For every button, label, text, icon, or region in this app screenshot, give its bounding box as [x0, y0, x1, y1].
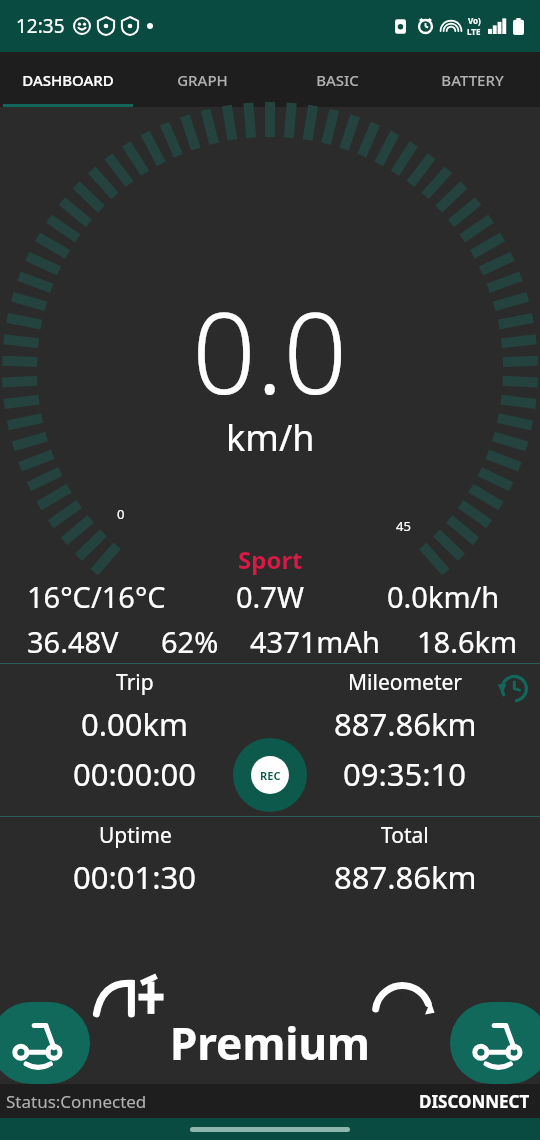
staticText: Premium [170, 1013, 370, 1073]
staticText: BASIC [316, 70, 359, 90]
staticText: REC [260, 768, 281, 783]
staticText: 0 [117, 505, 125, 523]
staticText: 45 [396, 517, 411, 535]
button[interactable]: Record [233, 738, 307, 812]
staticText: 12:35 [16, 13, 65, 39]
staticText: 00:01:30 [73, 856, 197, 898]
staticText: 36.48V [27, 622, 119, 661]
staticText: 0.0 [192, 274, 348, 427]
staticText: 00:00:00 [73, 753, 197, 795]
staticText: Mileometer [348, 668, 463, 697]
staticText: DASHBOARD [22, 70, 114, 90]
staticText: 887.86km [334, 703, 477, 745]
staticText: 887.86km [334, 856, 477, 898]
button[interactable]: BATTERY [405, 52, 540, 107]
button[interactable]: BASIC [270, 52, 405, 107]
staticText: Trip [116, 668, 154, 697]
button[interactable]: DISCONNECT [415, 1086, 534, 1117]
staticText: DISCONNECT [419, 1090, 530, 1113]
staticText: 18.6km [417, 622, 518, 661]
staticText: Total [381, 821, 429, 850]
button[interactable]: History [494, 669, 532, 707]
staticText: 0.0km/h [387, 577, 500, 616]
staticText: 4371mAh [250, 622, 380, 661]
staticText: 62% [161, 622, 219, 661]
staticText: Vo) [468, 15, 481, 26]
staticText: km/h [226, 413, 315, 462]
staticText: BATTERY [441, 70, 504, 90]
staticText: Uptime [99, 821, 172, 850]
staticText: 0.00km [81, 703, 189, 745]
button[interactable]: Scooter left [0, 1002, 90, 1084]
staticText: 0.7W [236, 577, 304, 616]
staticText: GRAPH [177, 70, 228, 90]
staticText: 09:35:10 [343, 753, 467, 795]
staticText: LTE [467, 26, 481, 37]
staticText: Status:Connected [6, 1090, 147, 1113]
button[interactable]: GRAPH [135, 52, 270, 107]
button[interactable]: DASHBOARD [0, 52, 135, 107]
staticText: 16°C/16°C [27, 577, 166, 616]
staticText: Sport [238, 543, 303, 576]
button[interactable]: Scooter right [450, 1002, 540, 1084]
